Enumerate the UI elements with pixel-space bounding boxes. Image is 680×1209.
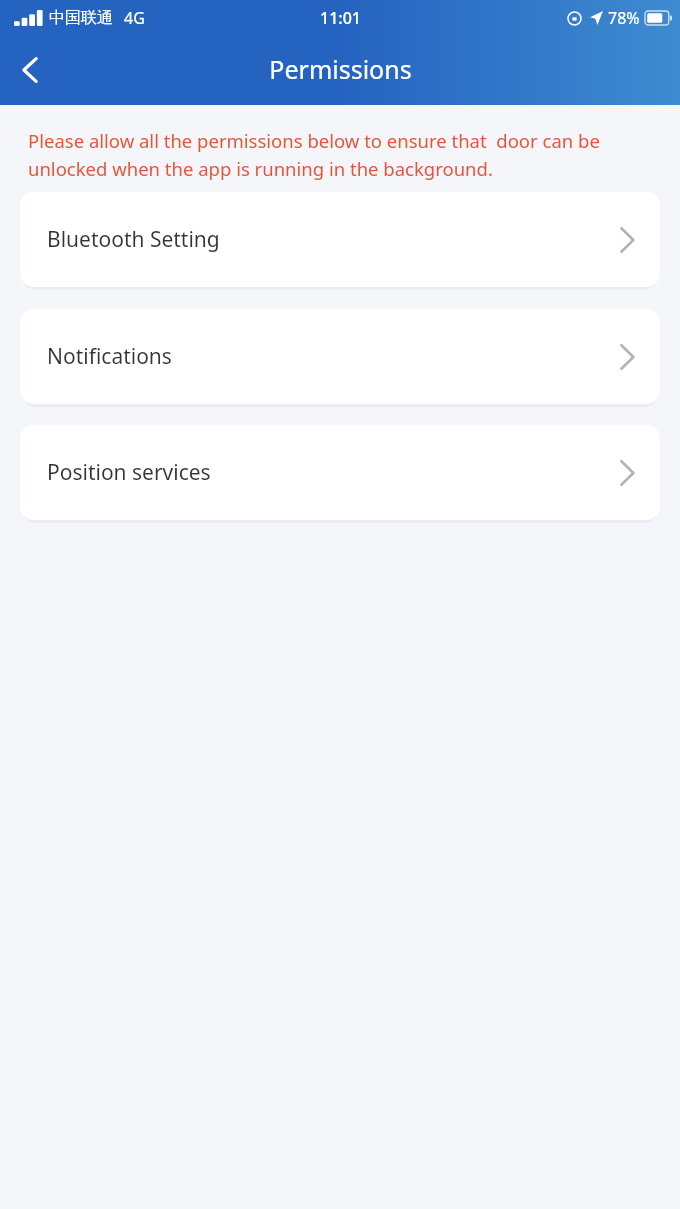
button[interactable]: Position services: [20, 425, 660, 520]
staticText: Please allow all the permissions below t…: [28, 128, 600, 153]
staticText: Notifications: [47, 342, 172, 371]
staticText: Position services: [47, 458, 211, 487]
button[interactable]: Notifications: [20, 309, 660, 404]
staticText: 4G: [124, 7, 145, 29]
staticText: 11:01: [320, 7, 361, 29]
staticText: Bluetooth Setting: [47, 225, 220, 254]
button[interactable]: Bluetooth Setting: [20, 192, 660, 287]
staticText: 78%: [608, 7, 640, 29]
staticText: 中国联通: [49, 8, 113, 28]
staticText: Permissions: [269, 52, 412, 86]
staticText: unlocked when the app is running in the …: [28, 156, 493, 181]
button[interactable]: Back: [2, 40, 58, 100]
